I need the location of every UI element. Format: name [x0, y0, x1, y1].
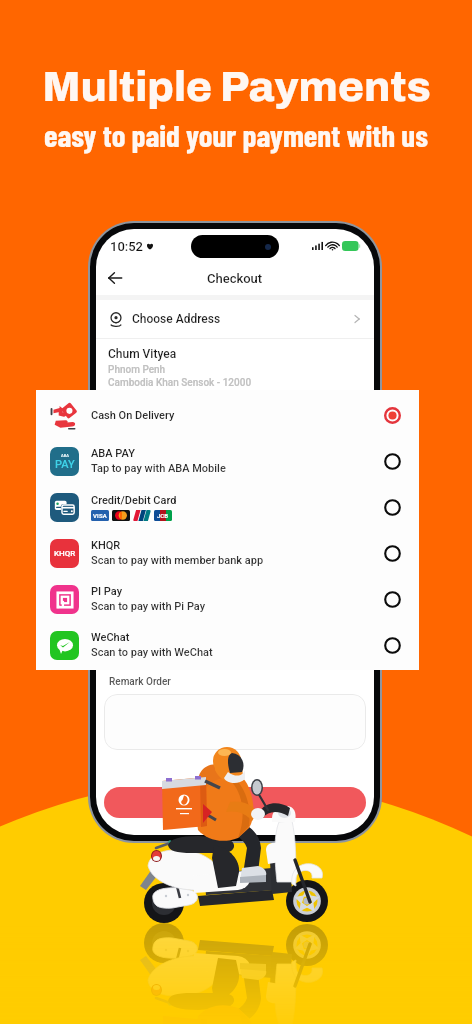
button[interactable]: Credit/Debit Card	[50, 484, 401, 530]
staticText: VISA	[93, 512, 107, 519]
staticText: easy to paid your payment with us	[44, 116, 428, 153]
staticText: Cash On Delivery	[91, 409, 175, 422]
button[interactable]: PI Pay	[50, 576, 401, 622]
button[interactable]: WeChat	[50, 622, 401, 668]
button[interactable]: ABA	[50, 438, 401, 484]
staticText: Order	[219, 795, 252, 810]
button[interactable]: Choose Address	[108, 300, 362, 338]
staticText: WeChat	[91, 631, 130, 644]
staticText: Tap to pay with ABA Mobile	[91, 462, 226, 475]
button[interactable]: Cash On Delivery	[50, 392, 401, 438]
staticText: KHQR	[54, 549, 76, 558]
staticText: Scan to pay with Pi Pay	[91, 600, 206, 613]
staticText: Credit/Debit Card	[91, 494, 177, 507]
button[interactable]: Back	[104, 267, 126, 289]
staticText: Cambodia Khan Sensok - 12000	[108, 377, 252, 389]
staticText: ABA	[61, 453, 69, 458]
staticText: ABA PAY	[91, 447, 135, 460]
staticText: Scan to pay with member bank app	[91, 554, 264, 567]
staticText: Checkout	[207, 271, 263, 286]
staticText: Multiple Payments	[42, 64, 431, 110]
staticText: JCB	[157, 512, 169, 519]
staticText: 10:52	[110, 239, 143, 254]
staticText: Remark Order	[109, 676, 171, 688]
staticText: Chum Vityea	[108, 347, 177, 361]
button[interactable]: KHQR	[50, 530, 401, 576]
button[interactable]: Order	[104, 787, 366, 818]
staticText: Phnom Penh	[108, 364, 166, 376]
staticText: Scan to pay with WeChat	[91, 646, 213, 659]
staticText: Choose Address	[132, 312, 221, 326]
staticText: PI Pay	[91, 585, 123, 598]
staticText: KHQR	[91, 539, 121, 552]
staticText: PAY	[55, 458, 75, 471]
